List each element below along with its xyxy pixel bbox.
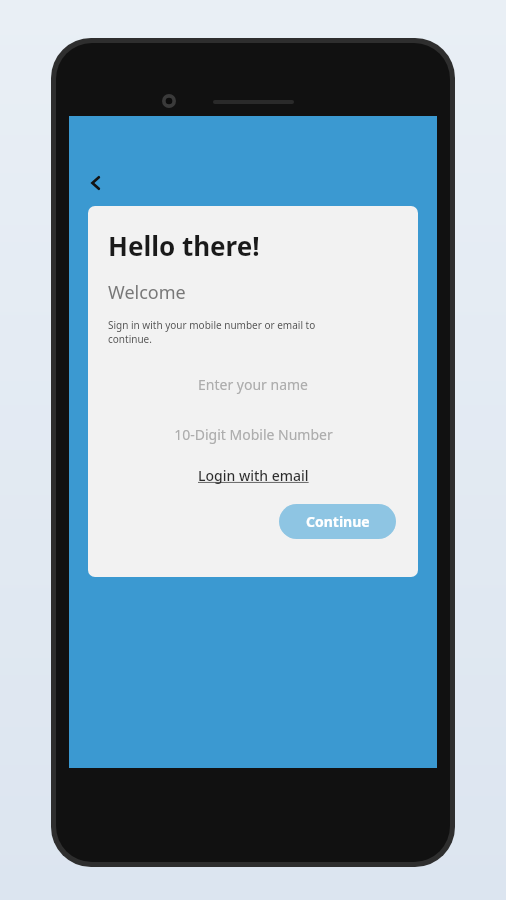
button[interactable]: Continue (279, 504, 396, 539)
staticText: Continue (306, 512, 370, 531)
staticText: Login with email (198, 466, 309, 485)
staticText: Enter your name (198, 375, 308, 394)
button[interactable]: Enter your name (88, 364, 418, 404)
button[interactable]: Back (76, 163, 116, 203)
staticText: Welcome (108, 280, 186, 305)
button[interactable]: Login with email (192, 462, 315, 489)
staticText: 10-Digit Mobile Number (174, 425, 333, 444)
staticText: Hello there! (108, 228, 260, 263)
staticText: Sign in with your mobile number or email… (108, 318, 316, 346)
button[interactable]: 10-Digit Mobile Number (88, 414, 418, 454)
